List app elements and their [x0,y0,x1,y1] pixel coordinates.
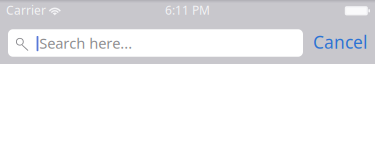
staticText: 6:11 PM [165,2,210,18]
button[interactable]: Search here... [8,29,303,57]
staticText: Search here... [39,33,132,53]
button[interactable]: Cancel [303,27,375,57]
staticText: Cancel [313,30,367,53]
staticText: Carrier [6,2,46,18]
